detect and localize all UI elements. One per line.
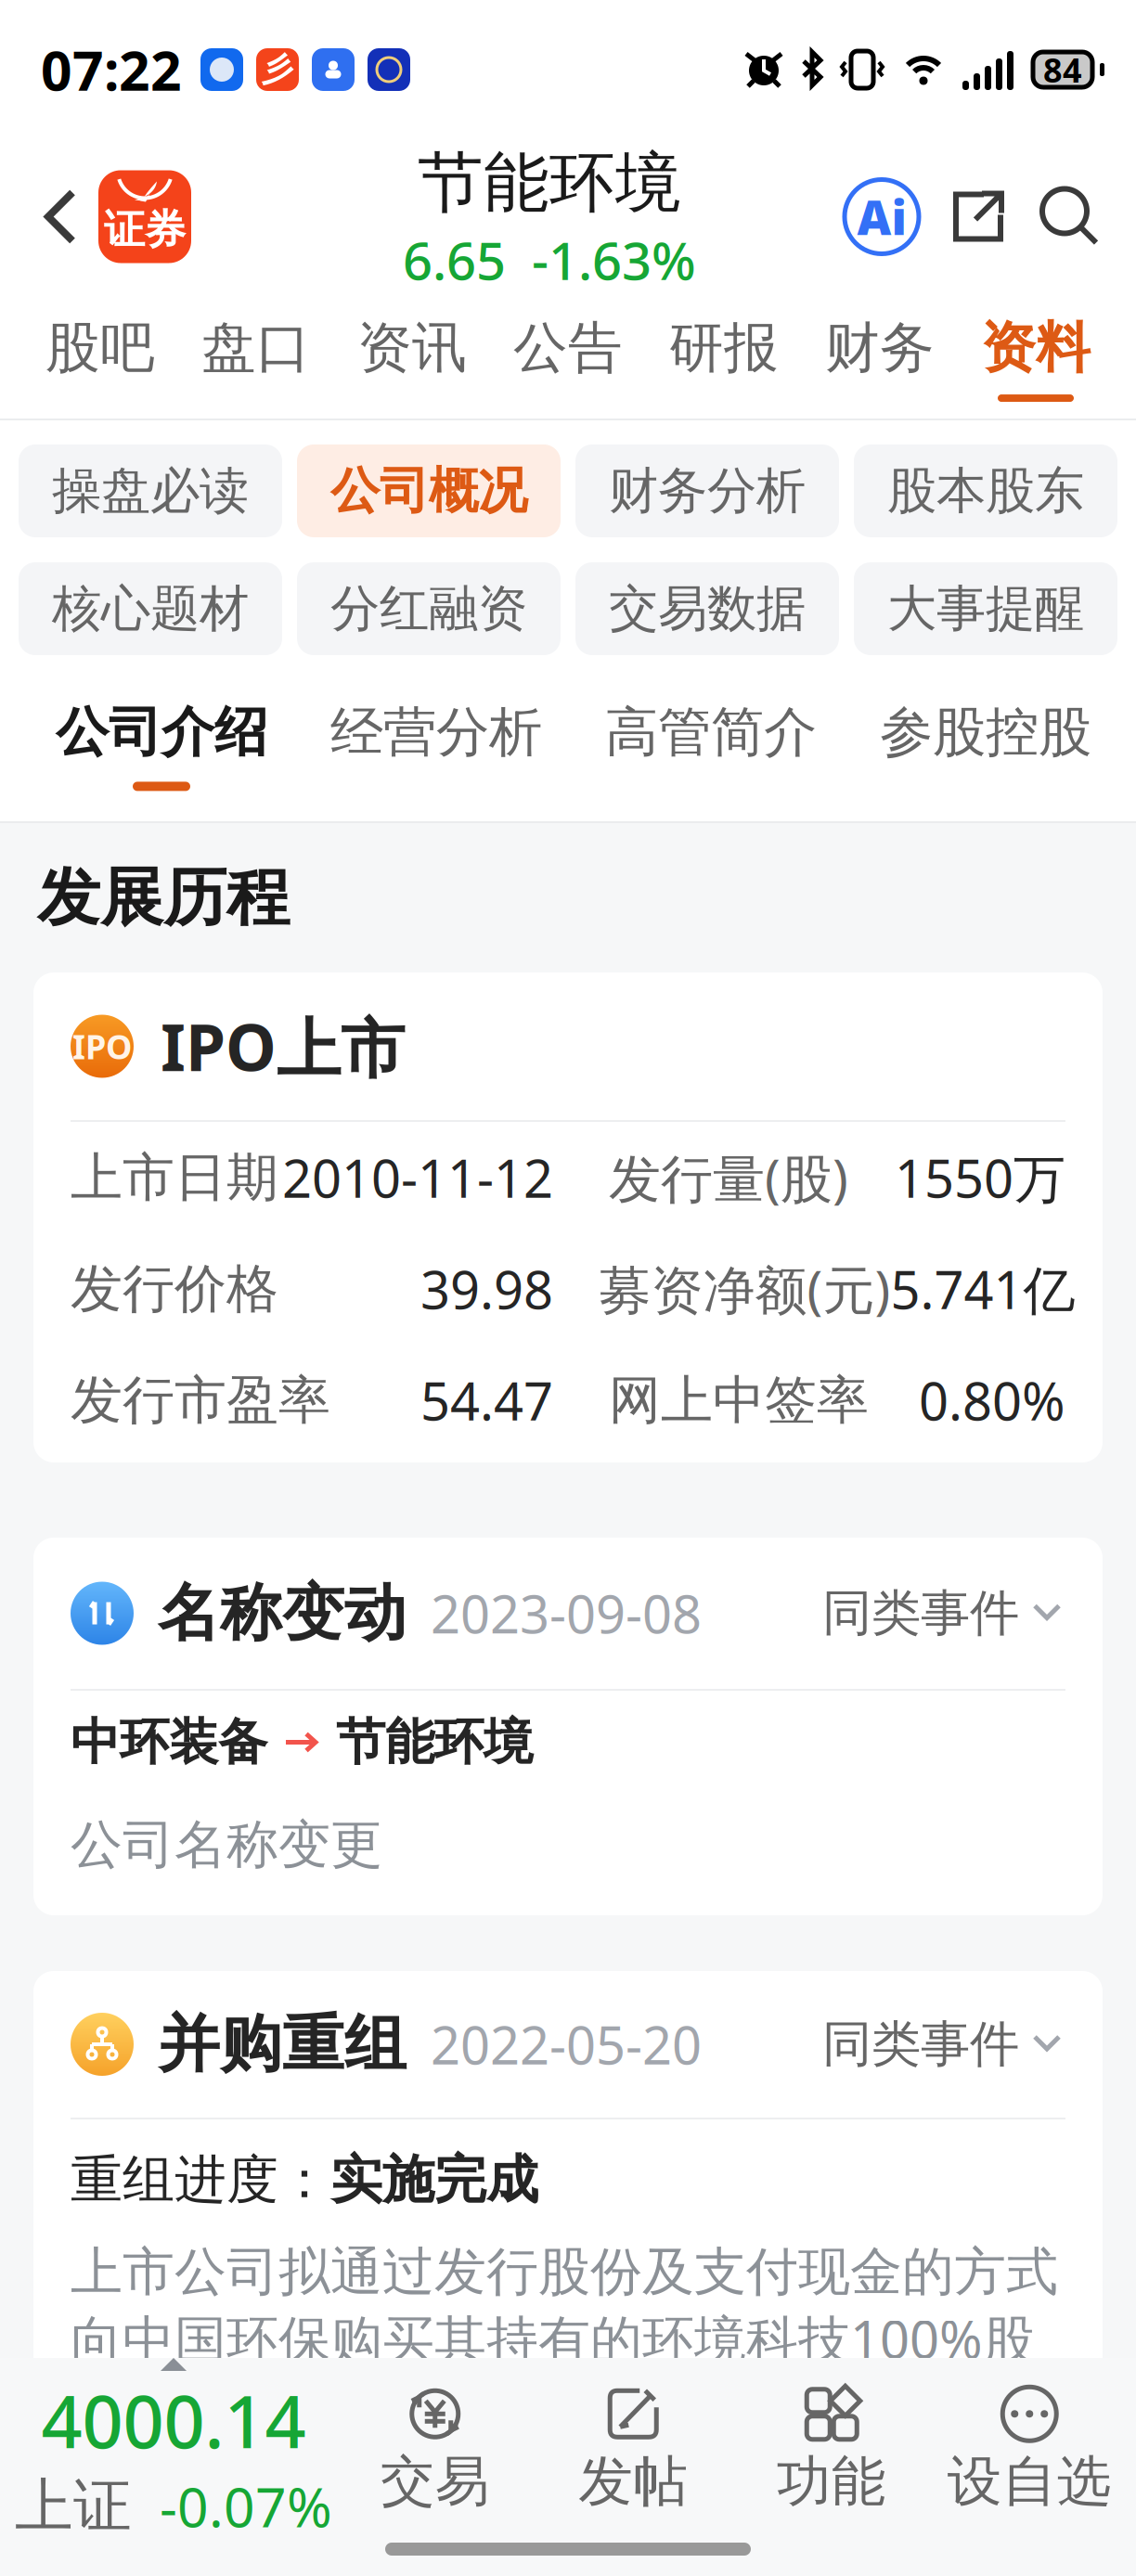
staticText: Ai: [857, 185, 906, 248]
staticText: 研报: [669, 315, 779, 381]
staticText: 发帖: [578, 2448, 688, 2515]
staticText: 1550万: [895, 1143, 1065, 1212]
staticText: 网上中签率: [609, 1368, 869, 1432]
staticText: 大事提醒: [887, 578, 1084, 639]
staticText: 资讯: [357, 315, 467, 381]
staticText: IPO上市: [161, 1003, 405, 1089]
staticText: 操盘必读: [52, 460, 249, 521]
button[interactable]: 资讯: [334, 294, 490, 419]
staticText: 分红融资: [330, 578, 527, 639]
button[interactable]: 功能: [732, 2385, 930, 2515]
staticText: 并购重组: [158, 2006, 407, 2082]
staticText: 发行价格: [71, 1257, 278, 1321]
staticText: 证券: [104, 205, 186, 255]
staticText: 同类事件: [822, 2014, 1019, 2075]
staticText: 中环装备: [71, 1712, 267, 1773]
button[interactable]: 经营分析: [299, 679, 574, 821]
button[interactable]: 发帖: [534, 2385, 732, 2515]
button[interactable]: Search: [1038, 185, 1101, 248]
button[interactable]: 财务: [802, 294, 958, 419]
button[interactable]: 证券: [98, 170, 191, 263]
staticText: 节能环境: [418, 143, 681, 223]
button[interactable]: 公告: [490, 294, 646, 419]
staticText: 上市日期: [71, 1146, 278, 1209]
staticText: 功能: [777, 2448, 886, 2515]
button[interactable]: 交易: [336, 2385, 534, 2515]
staticText: 交易: [380, 2448, 490, 2515]
staticText: 核心题材: [52, 578, 249, 639]
button[interactable]: 研报: [646, 294, 802, 419]
staticText: 资料: [981, 315, 1091, 381]
staticText: 公司概况: [330, 460, 527, 521]
staticText: 发行市盈率: [71, 1368, 330, 1432]
button[interactable]: 高管简介: [574, 679, 848, 821]
staticText: 参股控股: [880, 700, 1091, 765]
button[interactable]: 分红融资: [297, 562, 561, 655]
staticText: 发展历程: [37, 859, 290, 936]
button[interactable]: 财务分析: [575, 444, 839, 537]
staticText: 39.98: [420, 1254, 553, 1323]
staticText: 财务分析: [609, 460, 806, 521]
button[interactable]: 大事提醒: [854, 562, 1117, 655]
staticText: 84: [1043, 47, 1082, 92]
staticText: 54.47: [420, 1366, 553, 1435]
staticText: -1.63%: [532, 225, 696, 294]
staticText: 2023-09-08: [431, 1579, 702, 1648]
staticText: 设自选: [947, 2448, 1112, 2515]
staticText: 4000.14: [41, 2373, 306, 2468]
staticText: 财务: [825, 315, 935, 381]
staticText: 交易数据: [609, 578, 806, 639]
staticText: 股本股东: [887, 460, 1084, 521]
button[interactable]: 核心题材: [19, 562, 282, 655]
staticText: 名称变动: [158, 1575, 407, 1651]
staticText: 重组进度：: [71, 2148, 330, 2212]
staticText: 2010-11-12: [282, 1143, 553, 1212]
staticText: 2022-05-20: [431, 2010, 702, 2079]
button[interactable]: 同类事件: [822, 1583, 1065, 1644]
button[interactable]: 公司介绍: [24, 679, 299, 821]
staticText: 0.80%: [919, 1366, 1065, 1435]
staticText: 募资净额(元): [599, 1254, 891, 1323]
button[interactable]: AI assistant: [845, 180, 919, 254]
staticText: 股吧: [45, 315, 155, 381]
button[interactable]: 公司概况: [297, 444, 561, 537]
staticText: 公司名称变更: [71, 1813, 382, 1877]
staticText: 高管简介: [605, 700, 817, 765]
staticText: 彡: [261, 50, 294, 89]
button[interactable]: 交易数据: [575, 562, 839, 655]
staticText: 公司介绍: [56, 700, 267, 765]
button[interactable]: 上证指数 4000.14: [11, 2358, 336, 2542]
staticText: 5.741亿: [891, 1254, 1075, 1323]
button[interactable]: 盘口: [178, 294, 334, 419]
staticText: 07:22: [41, 33, 182, 106]
button[interactable]: 操盘必读: [19, 444, 282, 537]
staticText: 经营分析: [330, 700, 542, 765]
staticText: 节能环境: [336, 1712, 533, 1773]
staticText: 上证: [15, 2470, 132, 2542]
staticText: 6.65: [403, 225, 506, 294]
staticText: 发行量(股): [609, 1143, 848, 1212]
staticText: -0.07%: [160, 2470, 332, 2542]
button[interactable]: 同类事件: [822, 2014, 1065, 2075]
staticText: IPO: [72, 1024, 132, 1068]
button[interactable]: 资料: [958, 294, 1114, 419]
staticText: 同类事件: [822, 1583, 1019, 1644]
button[interactable]: 股吧: [22, 294, 178, 419]
button[interactable]: 参股控股: [848, 679, 1123, 821]
staticText: 盘口: [201, 315, 311, 381]
button[interactable]: Back: [37, 181, 84, 252]
staticText: 上市公司拟通过发行股份及支付现金的方式向中国环保购买其持有的环境科技100%股权: [71, 2240, 1058, 2437]
staticText: 实施完成: [330, 2148, 538, 2212]
button[interactable]: Share: [949, 187, 1008, 246]
button[interactable]: 股本股东: [854, 444, 1117, 537]
staticText: 公告: [513, 315, 623, 381]
button[interactable]: 设自选: [930, 2385, 1129, 2515]
